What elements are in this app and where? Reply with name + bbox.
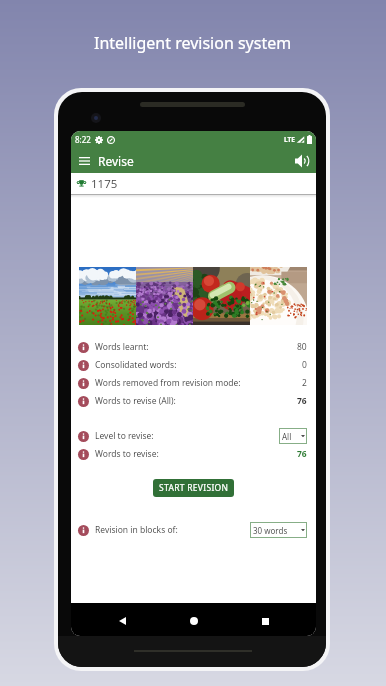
staticText: Intelligent revision system (94, 32, 292, 54)
staticText: 76 (297, 395, 307, 407)
button[interactable]: All (279, 428, 307, 444)
staticText: Words learnt: (95, 341, 149, 353)
button[interactable]: 30 words (250, 522, 307, 538)
staticText: Words removed from revision mode: (95, 377, 241, 389)
staticText: 8:22 (75, 134, 91, 145)
staticText: START REVISION (159, 482, 229, 494)
staticText: 80 (297, 341, 307, 353)
staticText: Revision in blocks of: (95, 524, 178, 536)
staticText: Level to revise: (95, 430, 154, 442)
button[interactable]: Open navigation menu (71, 148, 97, 173)
staticText: 2 (302, 377, 307, 389)
staticText: 76 (297, 448, 307, 460)
staticText: 30 words (253, 525, 288, 536)
button[interactable]: Recent apps (250, 606, 280, 636)
button[interactable]: START REVISION (153, 479, 234, 497)
staticText: 0 (302, 359, 307, 371)
button[interactable]: Home (179, 606, 209, 636)
button[interactable]: Sound (288, 148, 316, 173)
staticText: All (282, 431, 292, 442)
staticText: Words to revise (All): (95, 395, 176, 407)
button[interactable]: Back (107, 606, 137, 636)
staticText: 1175 (91, 176, 118, 192)
staticText: Consolidated words: (95, 359, 177, 371)
staticText: Revise (98, 153, 134, 169)
staticText: LTE (284, 135, 295, 144)
staticText: Words to revise: (95, 448, 159, 460)
